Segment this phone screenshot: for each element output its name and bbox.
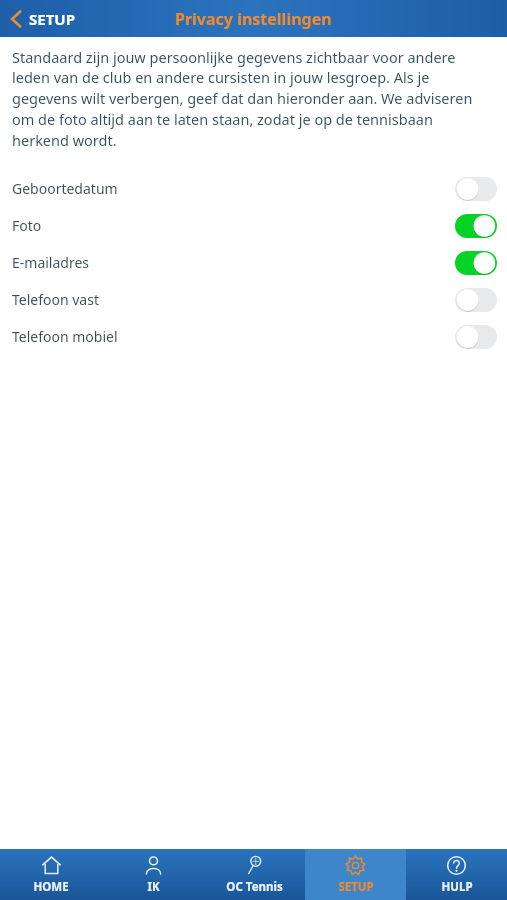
button[interactable]: Aan (455, 251, 497, 275)
staticText: Foto (12, 216, 42, 235)
button[interactable]: Telefoon vast (0, 281, 507, 318)
button[interactable]: IK (102, 849, 204, 900)
button[interactable]: Foto (0, 207, 507, 244)
staticText: SETUP (338, 879, 374, 895)
button[interactable]: Geboortedatum (0, 170, 507, 207)
button[interactable]: E-mailadres (0, 244, 507, 281)
button[interactable]: Uit (455, 288, 497, 312)
staticText: Privacy instellingen (175, 8, 332, 30)
button[interactable]: Uit (455, 177, 497, 201)
staticText: IK (147, 879, 160, 895)
staticText: HOME (33, 879, 69, 895)
button[interactable]: HOME (0, 849, 102, 900)
button[interactable]: Aan (455, 214, 497, 238)
staticText: Standaard zijn jouw persoonlijke gegeven… (12, 47, 493, 151)
staticText: Telefoon mobiel (12, 327, 118, 346)
button[interactable]: Uit (455, 325, 497, 349)
button[interactable]: OC Tennis (204, 849, 305, 900)
staticText: Telefoon vast (12, 290, 99, 309)
staticText: Geboortedatum (12, 179, 118, 198)
staticText: SETUP (29, 9, 75, 29)
button[interactable]: SETUP (0, 5, 85, 33)
button[interactable]: SETUP (305, 849, 406, 900)
button[interactable]: Telefoon mobiel (0, 318, 507, 355)
staticText: E-mailadres (12, 253, 90, 272)
button[interactable]: HULP (406, 849, 507, 900)
staticText: HULP (441, 879, 473, 895)
staticText: OC Tennis (226, 879, 283, 895)
